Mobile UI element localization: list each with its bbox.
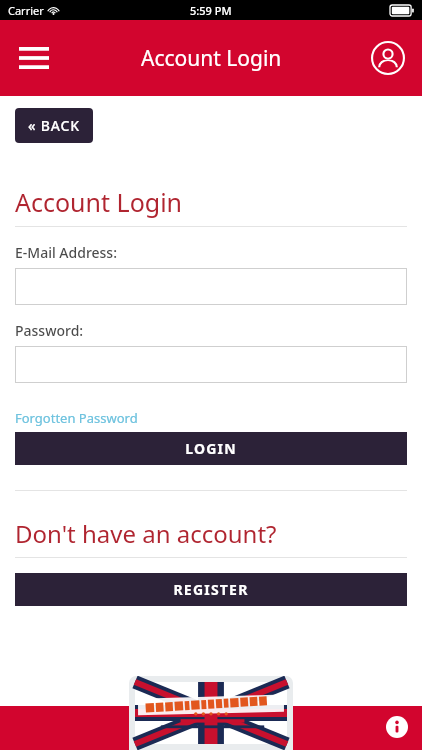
button[interactable]: Bush Hill Park logo [129, 676, 293, 750]
button[interactable]: Menu [10, 34, 58, 82]
button[interactable]: « BACK [15, 108, 93, 143]
button[interactable] [15, 268, 407, 305]
button[interactable]: Forgotten Password [15, 409, 138, 427]
staticText: Account Login [15, 185, 183, 219]
staticText: Account Login [141, 44, 282, 73]
staticText: Password: [15, 321, 84, 340]
button[interactable]: Account [364, 34, 412, 82]
button[interactable]: LOGIN [15, 432, 407, 465]
staticText: E-Mail Address: [15, 243, 117, 262]
staticText: Don't have an account? [15, 517, 277, 550]
button[interactable]: REGISTER [15, 573, 407, 606]
staticText: Carrier [8, 3, 44, 18]
staticText: LOGIN [185, 439, 237, 458]
staticText: « BACK [28, 116, 80, 135]
staticText: REGISTER [173, 580, 249, 599]
button[interactable] [15, 346, 407, 383]
button[interactable]: Information [382, 712, 412, 742]
staticText: 5:59 PM [190, 3, 232, 18]
